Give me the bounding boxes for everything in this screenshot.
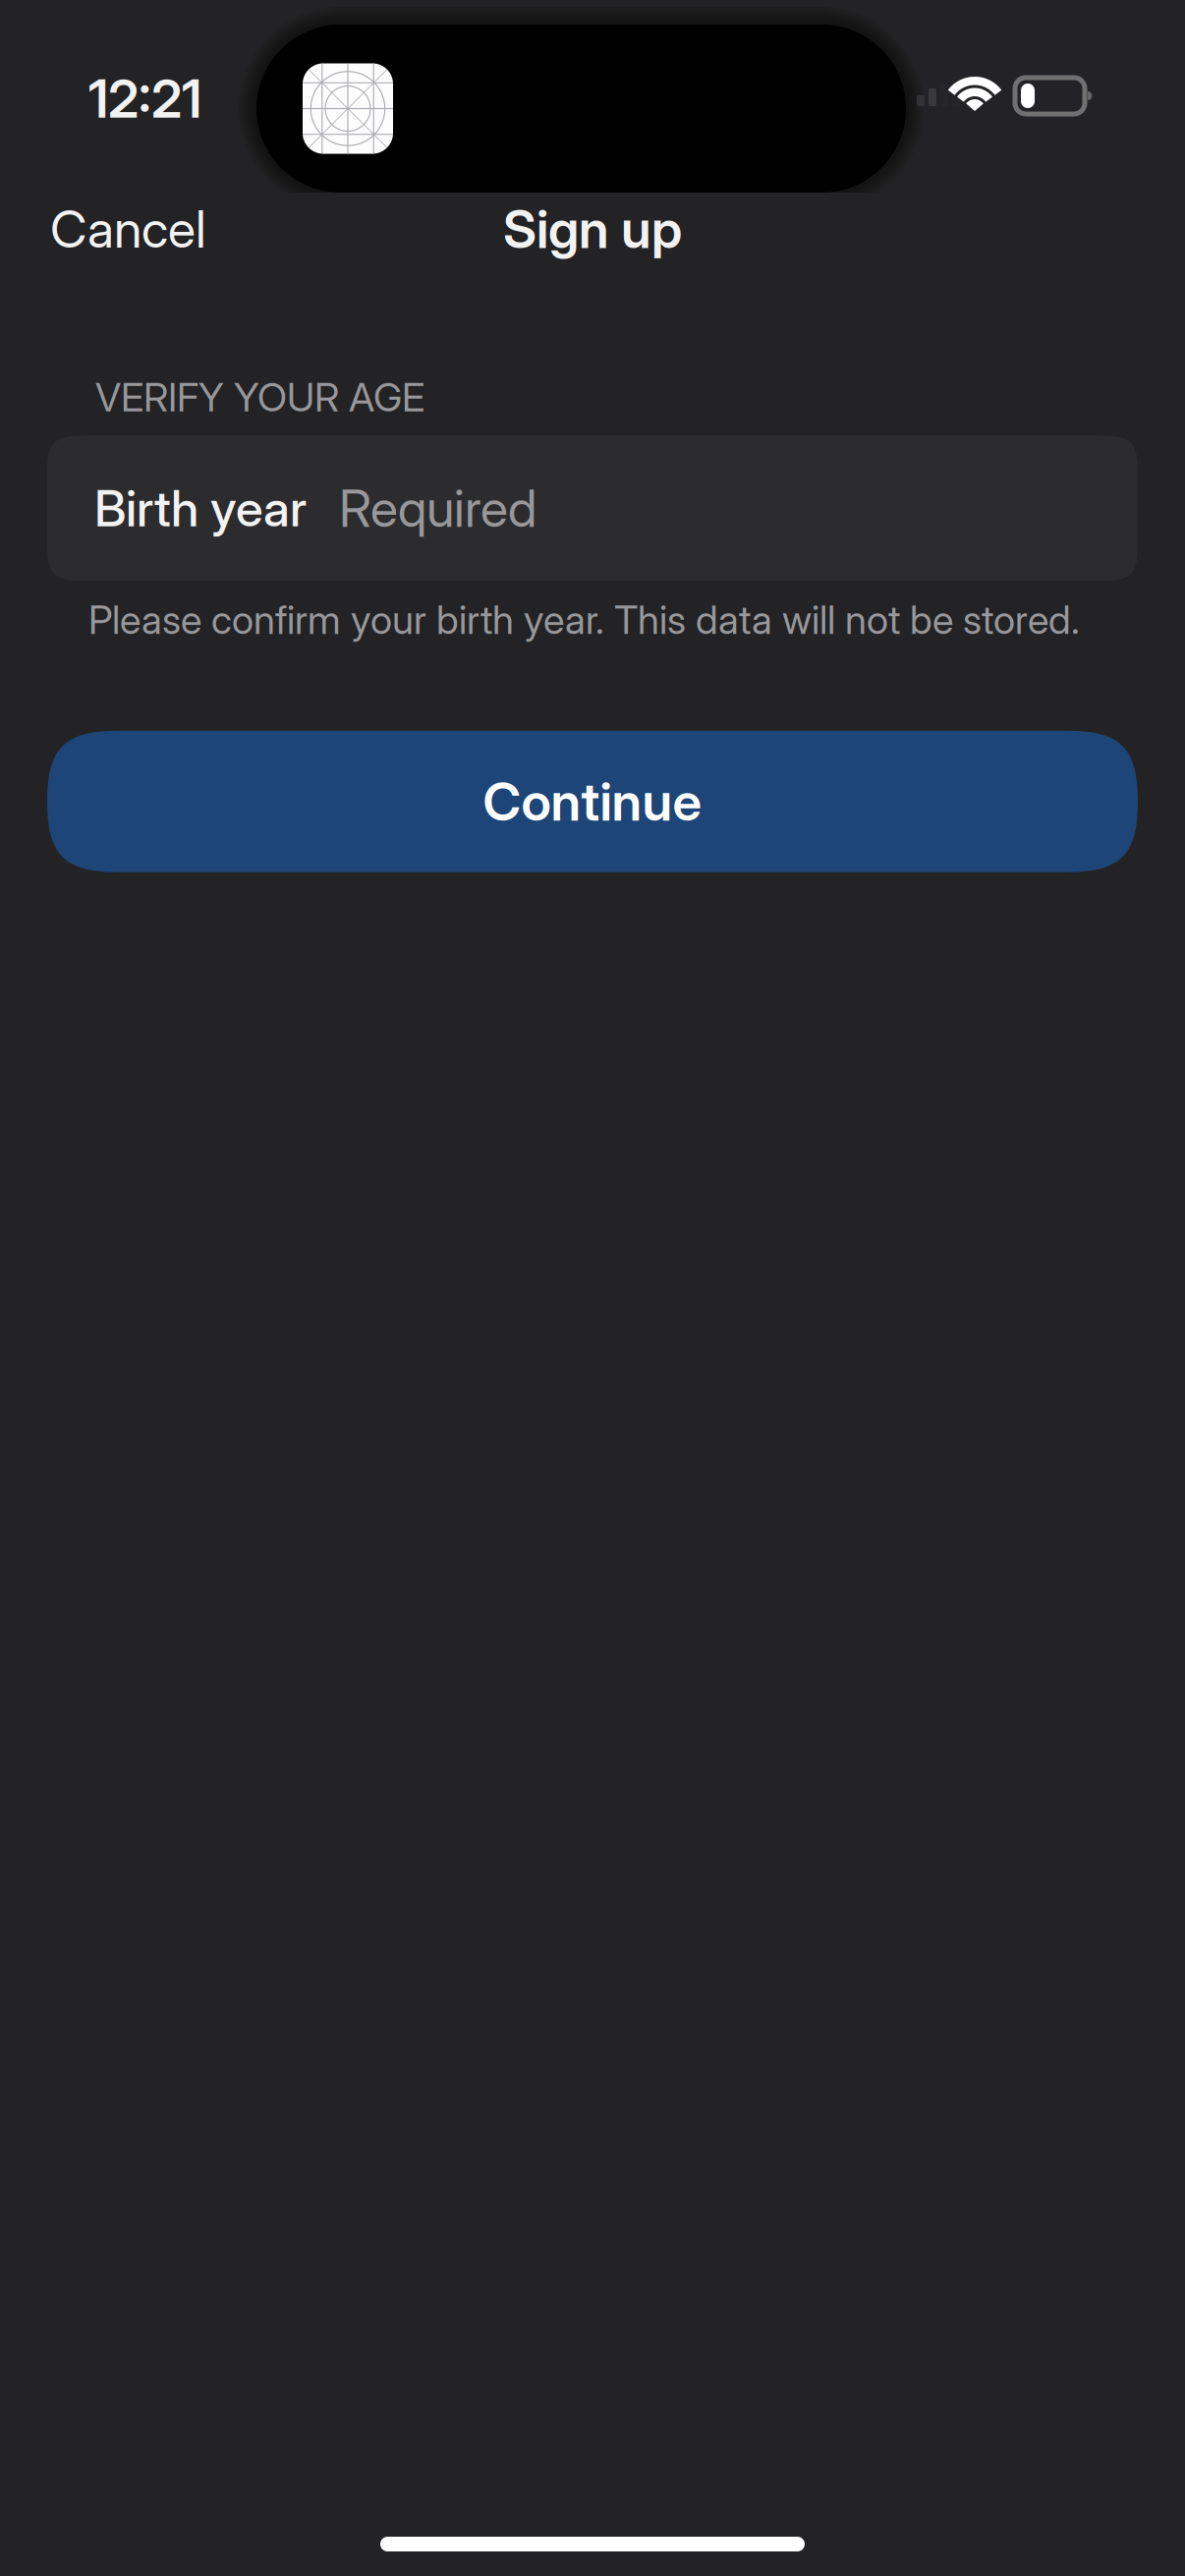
staticText: 12:21 — [88, 67, 201, 130]
staticText: Required — [339, 477, 536, 539]
staticText: Continue — [483, 770, 702, 833]
staticText: Sign up — [503, 197, 682, 261]
staticText: Cancel — [50, 198, 206, 260]
staticText: Please confirm your birth year. This dat… — [88, 596, 1080, 643]
staticText: VERIFY YOUR AGE — [95, 373, 424, 421]
button[interactable]: Birth year — [47, 436, 1138, 581]
staticText: Birth year — [94, 478, 307, 538]
button[interactable]: Continue — [47, 731, 1138, 872]
button[interactable]: Cancel — [0, 192, 256, 287]
